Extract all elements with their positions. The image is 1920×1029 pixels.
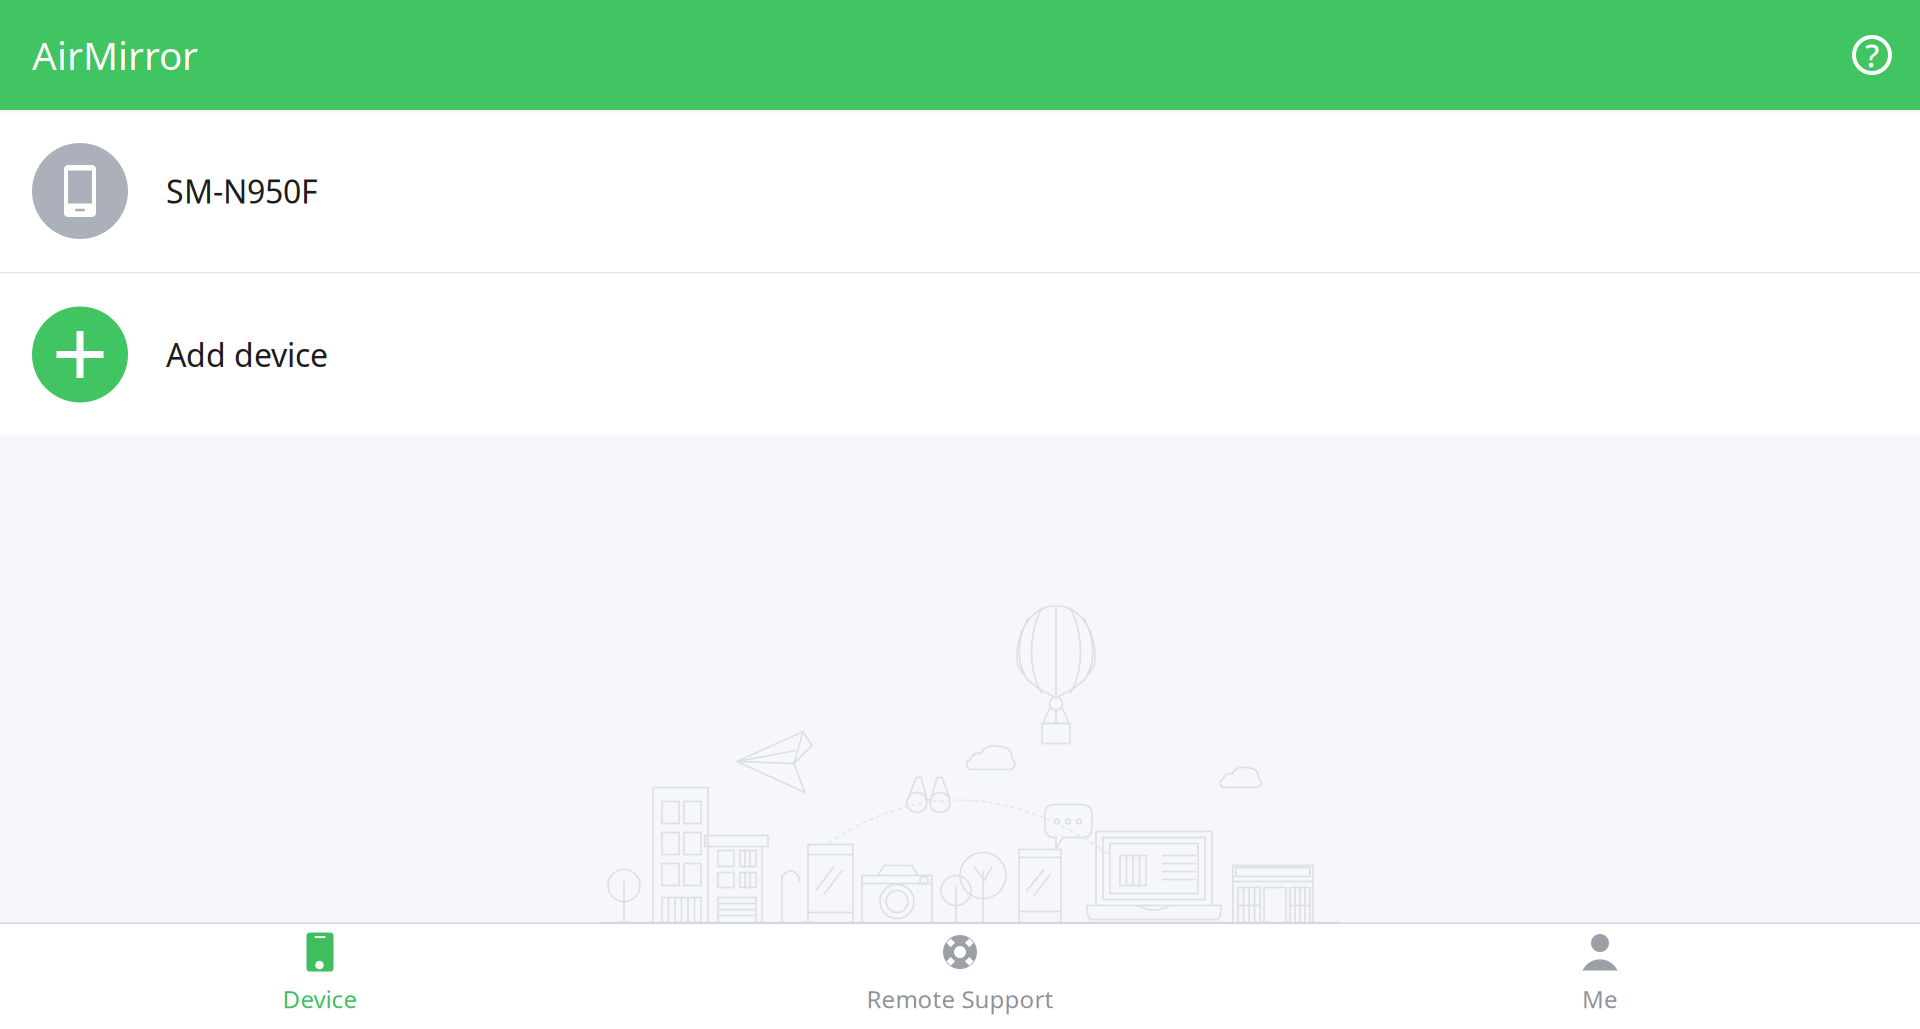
staticText: SM-N950F	[166, 170, 318, 212]
button[interactable]: Remote Support	[640, 924, 1280, 1029]
staticText: ?	[1865, 34, 1879, 76]
staticText: Device	[282, 983, 357, 1015]
button[interactable]: Device	[0, 924, 640, 1029]
staticText: Remote Support	[866, 983, 1053, 1015]
staticText: Add device	[166, 333, 328, 376]
staticText: AirMirror	[32, 29, 198, 81]
button[interactable]: Help	[1848, 31, 1896, 79]
staticText: Me	[1582, 983, 1618, 1015]
button[interactable]: Me	[1280, 924, 1920, 1029]
button[interactable]: SM-N950F	[0, 110, 1920, 272]
button[interactable]: Add device	[0, 273, 1920, 435]
